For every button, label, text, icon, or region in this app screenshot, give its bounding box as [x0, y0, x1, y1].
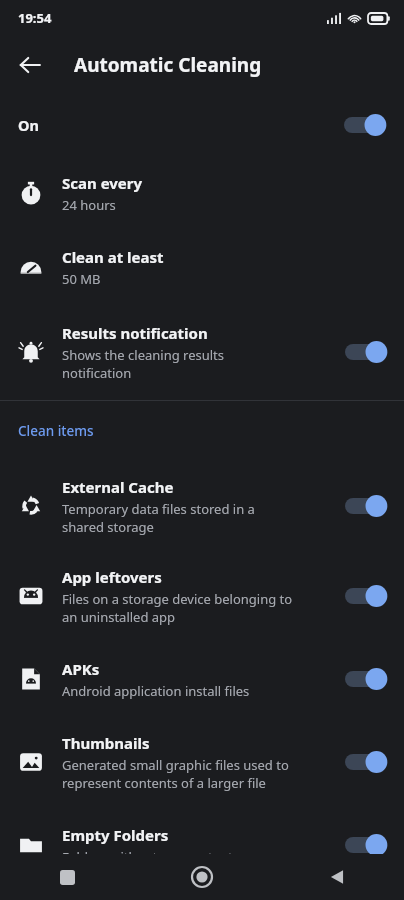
staticText: Temporary data files stored in a shared …	[62, 500, 255, 536]
staticText: Empty Folders	[62, 825, 169, 845]
staticText: Automatic Cleaning	[74, 52, 262, 78]
staticText: APKs	[62, 659, 100, 679]
button[interactable]: Scan every	[0, 156, 404, 230]
button[interactable]: External Cache	[0, 461, 404, 551]
staticText: 50 MB	[62, 270, 101, 288]
button[interactable]: Clean at least	[0, 230, 404, 304]
button[interactable]: Empty Folders	[0, 807, 404, 883]
staticText: 19:54	[18, 9, 52, 27]
staticText: Folders without any content	[62, 848, 233, 866]
staticText: Files on a storage device belonging to a…	[62, 590, 293, 626]
staticText: Android application install files	[62, 682, 250, 700]
button[interactable]: App leftovers	[0, 551, 404, 641]
staticText: Thumbnails	[62, 733, 150, 753]
staticText: Shows the cleaning results notification	[62, 346, 225, 382]
button[interactable]: Home	[134, 854, 269, 900]
button[interactable]: Results notification	[0, 304, 404, 400]
button[interactable]: Toggle	[345, 832, 389, 858]
staticText: 24 hours	[62, 196, 116, 214]
button[interactable]: On	[0, 94, 404, 156]
staticText: Clean items	[18, 422, 94, 440]
button[interactable]: Toggle	[345, 749, 389, 775]
staticText: External Cache	[62, 477, 174, 497]
button[interactable]: Toggle	[345, 666, 389, 692]
staticText: Generated small graphic files used to re…	[62, 756, 289, 792]
button[interactable]: Toggle	[345, 339, 389, 365]
button[interactable]: Toggle	[345, 493, 389, 519]
staticText: Scan every	[62, 173, 143, 193]
button[interactable]: Back	[8, 43, 52, 87]
staticText: Clean at least	[62, 247, 164, 267]
button[interactable]: APKs	[0, 641, 404, 717]
staticText: On	[18, 115, 39, 135]
button[interactable]: Thumbnails	[0, 717, 404, 807]
button[interactable]: Recents	[0, 854, 134, 900]
button[interactable]: Toggle	[344, 112, 388, 138]
staticText: App leftovers	[62, 567, 162, 587]
staticText: Results notification	[62, 323, 208, 343]
button[interactable]: Back	[269, 854, 404, 900]
button[interactable]: Toggle	[345, 583, 389, 609]
